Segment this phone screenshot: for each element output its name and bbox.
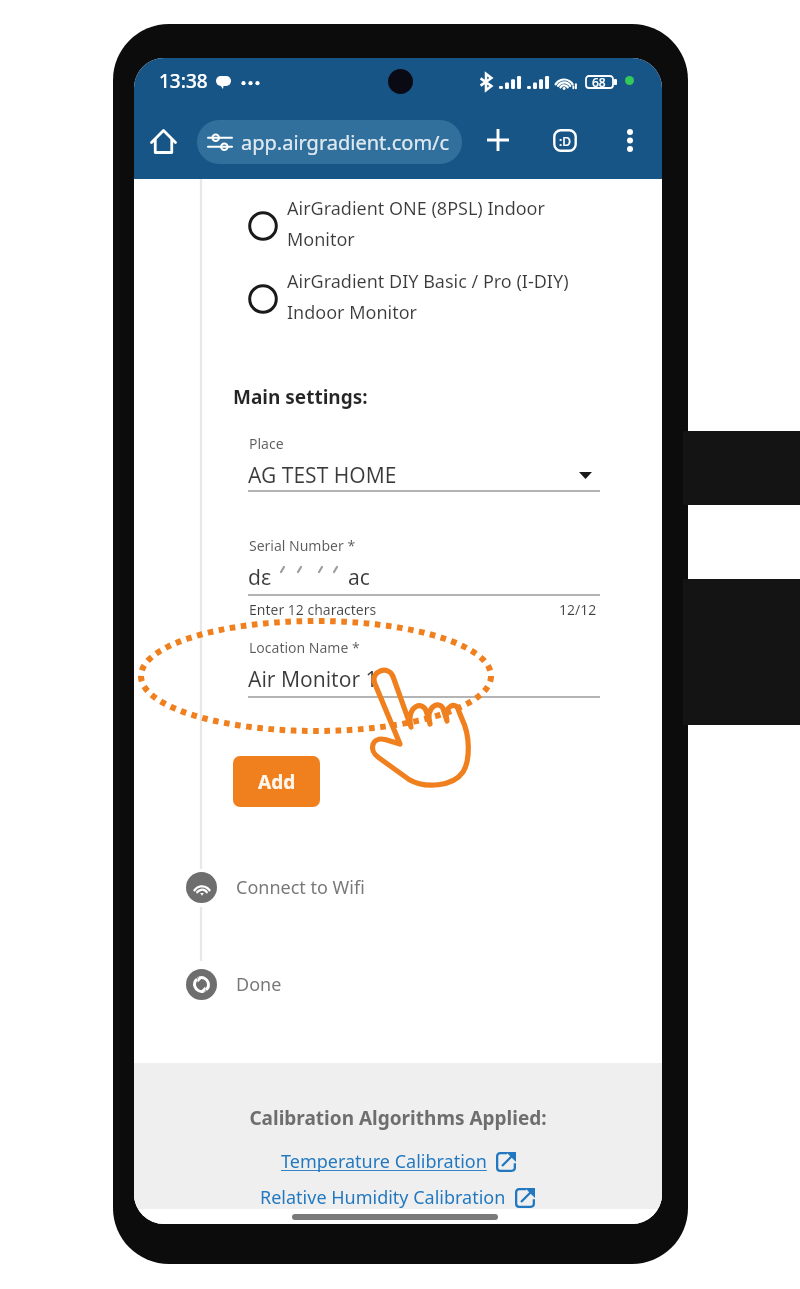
button[interactable]: Relative Humidity Calibration [260,1185,535,1210]
button[interactable] [248,284,278,314]
staticText: 68 [592,74,606,88]
button[interactable]: Tabs [543,118,587,162]
staticText: Location Name * [249,638,360,657]
staticText: Relative Humidity Calibration [260,1185,506,1210]
button[interactable]: Temperature Calibration [281,1149,516,1174]
button[interactable]: AirGradient ONE (8PSL) Indoor Monitor [287,196,545,252]
staticText: AirGradient DIY Basic / Pro (I-DIY) Indo… [287,269,569,325]
button[interactable]: Done [186,969,282,1000]
staticText: 13:38 [159,68,208,94]
staticText: Serial Number * [249,536,356,555]
staticText: Done [236,972,282,997]
button[interactable]: New tab [476,118,520,162]
staticText: :D [559,133,572,149]
staticText: Air Monitor 1 [248,665,378,694]
staticText: Add [258,769,296,795]
staticText: ac [348,563,370,592]
staticText: Temperature Calibration [281,1149,487,1174]
staticText: Enter 12 characters [249,600,377,619]
button[interactable]: Add [233,756,320,807]
button[interactable] [248,211,278,241]
button[interactable]: AirGradient DIY Basic / Pro (I-DIY) Indo… [287,269,569,325]
staticText: Connect to Wifi [236,875,365,900]
staticText: Place [249,434,284,453]
staticText: AirGradient ONE (8PSL) Indoor Monitor [287,196,545,252]
staticText: Main settings: [233,384,368,410]
button[interactable]: Connect to Wifi [186,872,365,903]
staticText: AG TEST HOME [248,461,397,490]
staticText: app.airgradient.com/c [241,129,450,156]
staticText: Calibration Algorithms Applied: [134,1105,662,1131]
button[interactable]: More options [608,118,652,162]
button[interactable]: app.airgradient.com/c [197,120,462,164]
staticText: 12/12 [559,600,597,619]
staticText: dɛ [248,563,272,592]
button[interactable]: Home [141,119,185,163]
